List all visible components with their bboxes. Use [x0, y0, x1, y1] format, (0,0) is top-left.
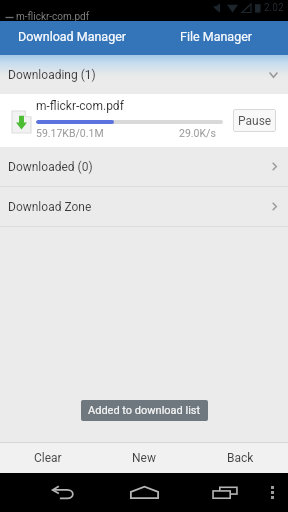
button[interactable]: More options [256, 473, 288, 512]
staticText: m-flickr-com.pdf [36, 99, 124, 113]
button[interactable]: Back [192, 443, 288, 473]
staticText: 2.02 [264, 2, 284, 14]
button[interactable]: Download Zone [0, 187, 288, 226]
staticText: m-flickr-com.pdf [16, 11, 90, 23]
staticText: New [132, 451, 156, 465]
staticText: Downloading (1) [8, 68, 96, 82]
staticText: Download Manager [18, 29, 127, 44]
button[interactable]: Clear [0, 443, 96, 473]
staticText: Downloaded (0) [8, 160, 93, 174]
button[interactable]: m-flickr-com.pdf [0, 94, 288, 147]
button[interactable]: Downloaded (0) [0, 147, 288, 186]
button[interactable]: Home [124, 473, 164, 512]
button[interactable]: File Manager [144, 21, 288, 52]
button[interactable]: New [96, 443, 192, 473]
staticText: Back [227, 451, 254, 465]
button[interactable]: Back [43, 473, 83, 512]
staticText: 59.17KB/0.1M [36, 127, 104, 139]
staticText: Download Zone [8, 200, 92, 214]
button[interactable]: Pause [233, 109, 276, 132]
button[interactable]: Downloading (1) [0, 55, 288, 94]
staticText: 29.0K/s [179, 127, 216, 139]
staticText: File Manager [180, 29, 253, 44]
button[interactable]: Download Manager [0, 21, 144, 52]
staticText: Pause [238, 114, 272, 128]
staticText: Added to download list [88, 404, 201, 417]
button[interactable]: Recent apps [205, 473, 245, 512]
staticText: Clear [34, 451, 62, 465]
